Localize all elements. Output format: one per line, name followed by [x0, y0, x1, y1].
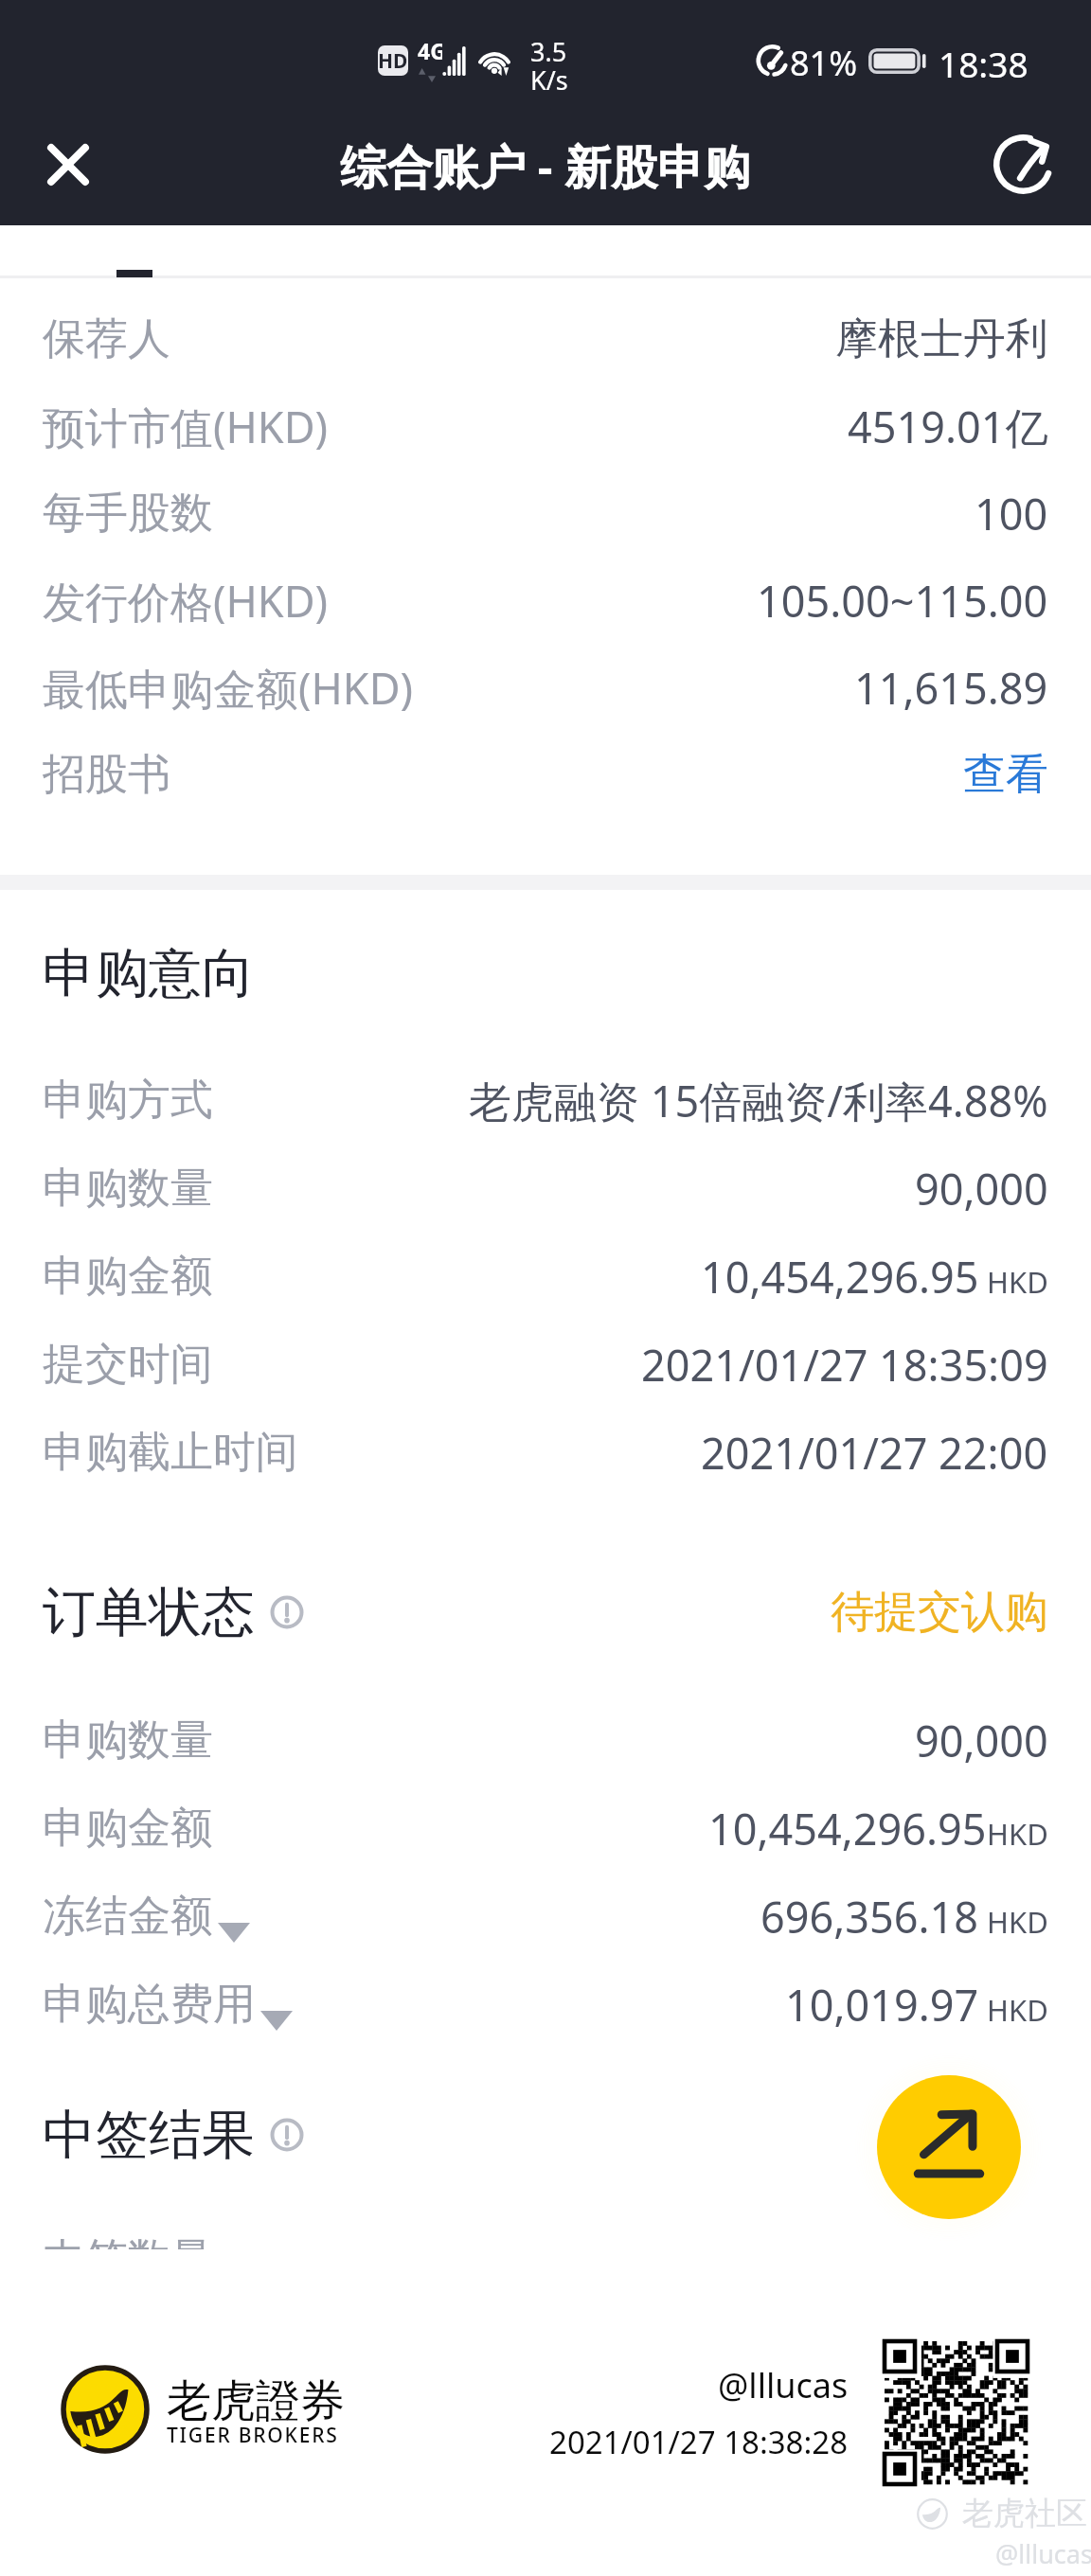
staticText: 待提交认购 — [831, 1585, 1048, 1640]
staticText: 保荐人 — [43, 312, 170, 366]
staticText: HKD — [979, 1902, 1048, 1942]
staticText: 100 — [975, 485, 1048, 542]
button[interactable]: 申购数量 — [0, 1145, 1091, 1233]
button[interactable]: Share — [877, 2075, 1021, 2219]
button[interactable]: Refresh — [983, 124, 1063, 204]
staticText: 每手股数 — [43, 487, 213, 541]
staticText: 90,000 — [915, 1712, 1048, 1769]
button[interactable]: 申购数量 — [0, 1697, 1091, 1785]
staticText: 申购总费用 — [43, 1978, 256, 2032]
staticText: 老虎融资 15倍融资/利率4.88% — [469, 1072, 1048, 1129]
staticText: 查看 — [963, 748, 1048, 802]
button[interactable]: 预计市值(HKD) — [0, 382, 1091, 470]
staticText: 预计市值(HKD) — [43, 398, 329, 455]
staticText: @lllucas — [995, 2536, 1091, 2571]
staticText: 申购数量 — [43, 1162, 213, 1216]
staticText: 申购数量 — [43, 1714, 213, 1768]
staticText: 冻结金额 — [43, 1890, 213, 1944]
button[interactable]: 申购方式 — [0, 1057, 1091, 1145]
button[interactable]: 申购意向 — [0, 936, 1091, 1010]
button[interactable]: 申购总费用 — [0, 1961, 1091, 2049]
staticText: 申购意向 — [43, 940, 255, 1007]
staticText: 申购截止时间 — [43, 1426, 298, 1480]
staticText: 18:38 — [939, 40, 1028, 81]
staticText: @lllucas — [718, 2362, 849, 2408]
button[interactable]: 申购金额 — [0, 1785, 1091, 1873]
staticText: 招股书 — [43, 748, 170, 802]
staticText: 4519.01亿 — [848, 398, 1048, 455]
staticText: 3.5 — [530, 34, 567, 69]
button[interactable]: 订单状态 — [0, 1575, 1091, 1649]
staticText: 4G — [418, 39, 442, 65]
staticText: 摩根士丹利 — [835, 312, 1048, 366]
staticText: 10,454,296.95 — [708, 1800, 987, 1857]
staticText: HKD — [979, 1262, 1048, 1302]
button[interactable]: Close — [28, 125, 108, 204]
staticText: 10,019.97 — [785, 1976, 979, 2034]
staticText: HKD — [987, 1814, 1048, 1854]
staticText: 2021/01/27 18:38:28 — [549, 2421, 849, 2463]
staticText: 老虎社区 — [962, 2494, 1087, 2533]
button[interactable]: 申购截止时间 — [0, 1409, 1091, 1497]
staticText: K/s — [530, 62, 568, 98]
button[interactable]: 中签结果 — [0, 2098, 1091, 2172]
staticText: 发行价格(HKD) — [43, 572, 329, 630]
button[interactable]: 保荐人 — [0, 295, 1091, 382]
staticText: 老虎證券 — [167, 2373, 345, 2429]
staticText: 11,615.89 — [854, 659, 1048, 717]
staticText: 696,356.18 — [760, 1888, 979, 1945]
staticText: 105.00~115.00 — [757, 572, 1048, 630]
button[interactable]: 发行价格(HKD) — [0, 557, 1091, 644]
staticText: 最低申购金额(HKD) — [43, 659, 414, 717]
staticText: 订单状态 — [43, 1579, 255, 1646]
button[interactable]: 提交时间 — [0, 1321, 1091, 1409]
staticText: HD — [378, 47, 408, 75]
staticText: 综合账户 - 新股申购 — [340, 134, 751, 198]
staticText: 中签结果 — [43, 2102, 255, 2169]
staticText: 申购金额 — [43, 1250, 213, 1304]
staticText: 90,000 — [915, 1160, 1048, 1217]
button[interactable]: 最低申购金额(HKD) — [0, 644, 1091, 731]
staticText: 申购方式 — [43, 1074, 213, 1128]
staticText: HKD — [979, 1990, 1048, 2030]
button[interactable]: 申购金额 — [0, 1233, 1091, 1321]
staticText: 提交时间 — [43, 1338, 213, 1392]
button[interactable]: 每手股数 — [0, 470, 1091, 557]
button[interactable]: 冻结金额 — [0, 1873, 1091, 1961]
button[interactable]: 招股书 — [0, 731, 1091, 818]
staticText: TIGER BROKERS — [167, 2422, 339, 2449]
staticText: 10,454,296.95 — [701, 1248, 979, 1306]
staticText: 2021/01/27 18:35:09 — [641, 1336, 1048, 1394]
staticText: 81% — [790, 40, 858, 81]
staticText: 2021/01/27 22:00 — [701, 1424, 1048, 1482]
staticText: 申购金额 — [43, 1802, 213, 1856]
staticText: 中签数量 — [43, 2239, 213, 2249]
